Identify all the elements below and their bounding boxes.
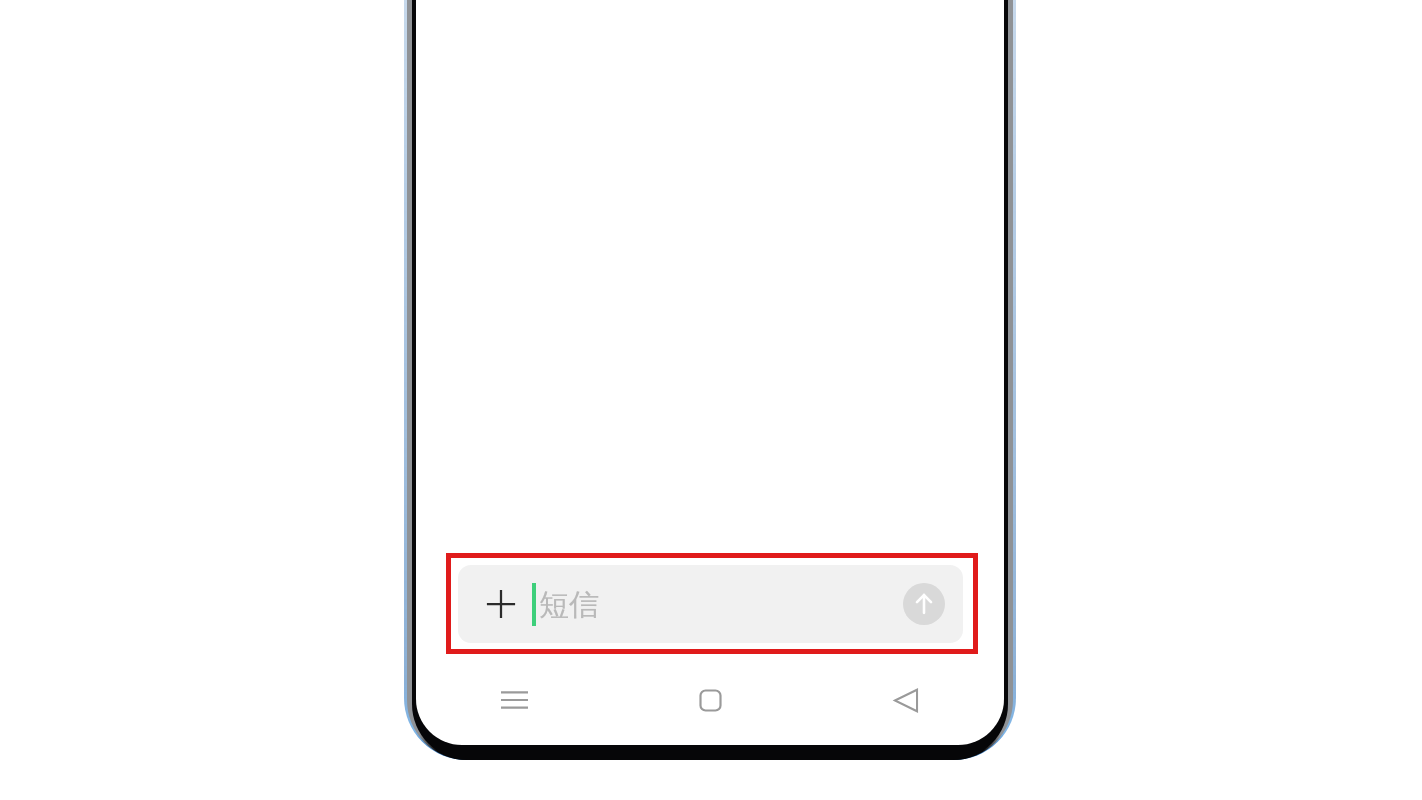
button[interactable]: Back <box>808 669 1004 731</box>
button[interactable]: Add attachment <box>480 583 522 625</box>
button[interactable]: Add attachment <box>458 565 963 643</box>
button[interactable]: Home <box>612 669 808 731</box>
button[interactable]: Send <box>903 583 945 625</box>
button[interactable]: Recent apps <box>416 669 612 731</box>
staticText: 短信 <box>539 586 599 624</box>
